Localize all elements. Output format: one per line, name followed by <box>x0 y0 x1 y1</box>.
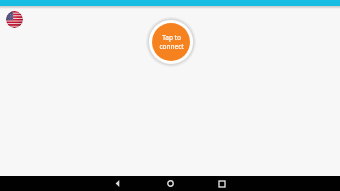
button[interactable]: Home <box>144 176 196 191</box>
button[interactable]: Recent apps <box>196 176 248 191</box>
button[interactable]: Back <box>92 176 144 191</box>
staticText: Tap to connect <box>159 33 184 51</box>
button[interactable]: Select language <box>6 11 23 28</box>
button[interactable]: Tap to connect <box>152 23 190 61</box>
